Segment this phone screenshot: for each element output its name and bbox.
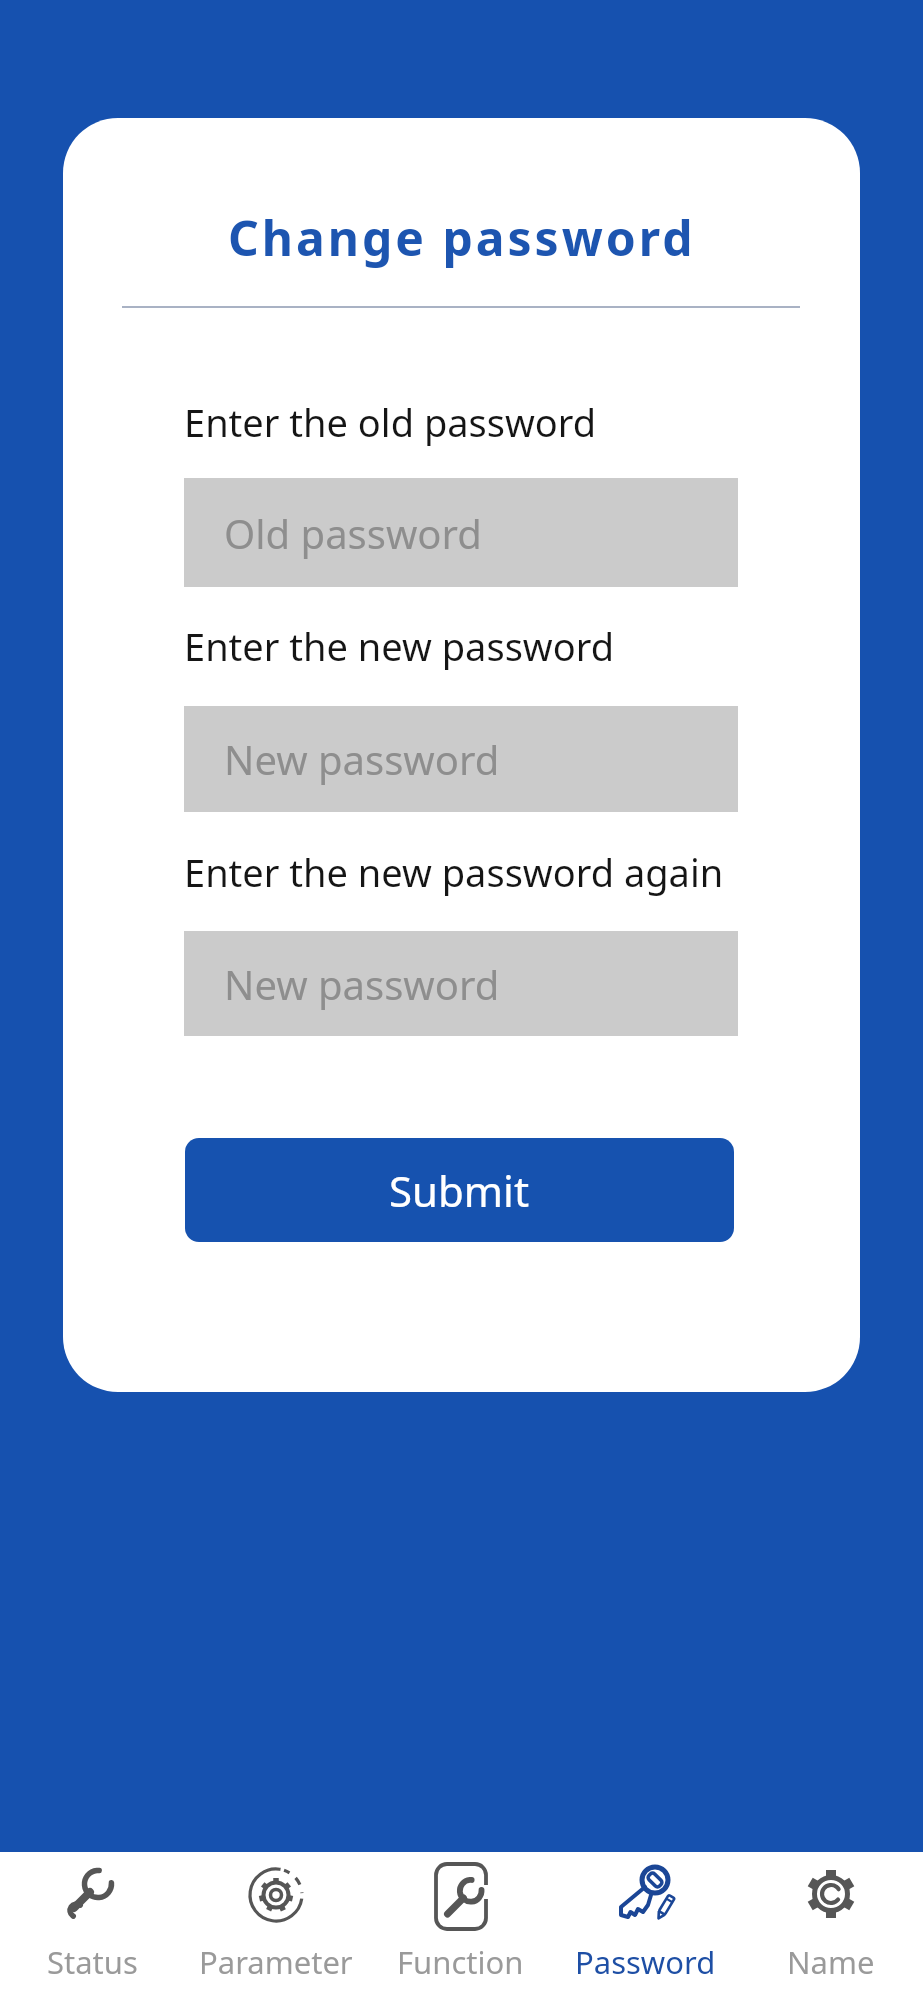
button[interactable]: Function [368,1852,553,2000]
button[interactable]: Parameter [184,1852,368,2000]
staticText: New password [224,732,500,786]
staticText: Status [47,1941,138,1983]
button[interactable]: Status [0,1852,184,2000]
button[interactable]: Old password [184,478,738,587]
staticText: Old password [224,506,482,560]
button[interactable]: New password [184,931,738,1036]
staticText: Parameter [199,1941,353,1983]
staticText: Submit [389,1162,530,1219]
staticText: Name [787,1941,875,1983]
staticText: Function [397,1941,524,1983]
staticText: Password [575,1941,716,1983]
staticText: Enter the new password again [184,846,724,898]
button[interactable]: Name [738,1852,923,2000]
staticText: Enter the new password [184,620,615,672]
button[interactable]: Password [553,1852,738,2000]
button[interactable]: New password [184,706,738,812]
staticText: Change password [228,205,696,270]
staticText: New password [224,957,500,1011]
staticText: Enter the old password [184,396,597,448]
button[interactable]: Submit [185,1138,734,1242]
